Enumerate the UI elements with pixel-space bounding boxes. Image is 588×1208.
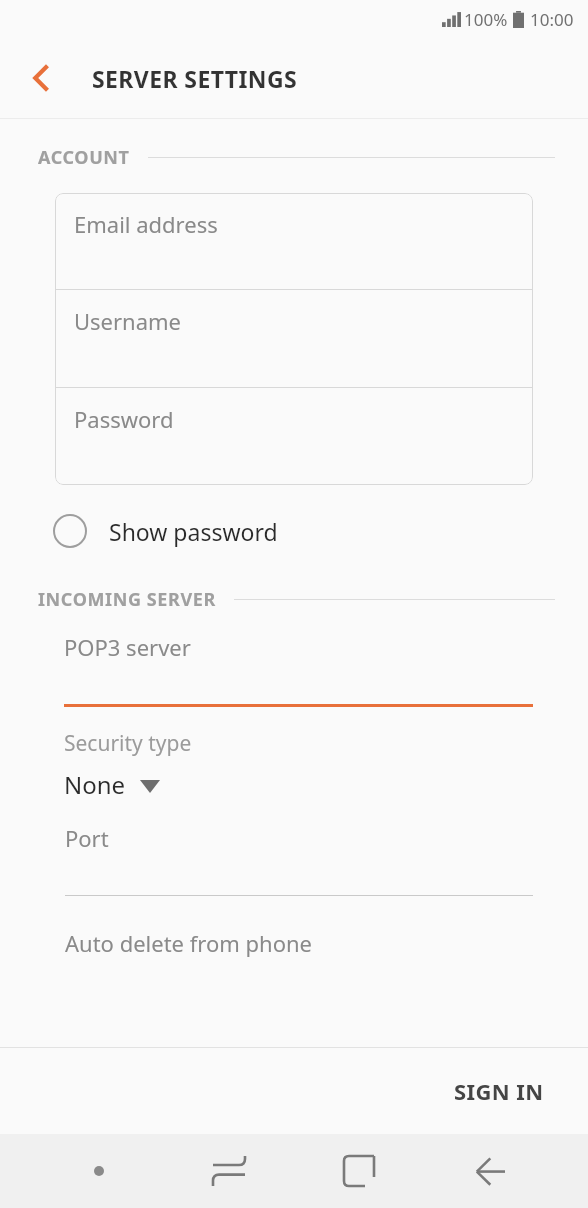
button[interactable]: Email address (55, 193, 533, 289)
staticText: Username (74, 306, 182, 336)
staticText: Port (65, 823, 109, 853)
button[interactable]: Back (18, 55, 64, 101)
staticText: Show password (109, 516, 278, 547)
button[interactable]: POP3 server (64, 632, 533, 707)
button[interactable]: Keyboard indicator (68, 1140, 130, 1202)
button[interactable]: Auto delete from phone (65, 928, 533, 958)
staticText: Email address (74, 209, 218, 239)
staticText: Password (74, 404, 174, 434)
button[interactable]: Username (55, 290, 533, 387)
staticText: SERVER SETTINGS (92, 63, 298, 94)
staticText: Auto delete from phone (65, 928, 312, 958)
button[interactable]: Port (65, 823, 533, 896)
staticText: Security type (64, 729, 192, 758)
staticText: None (64, 768, 126, 801)
button[interactable]: SIGN IN (440, 1064, 558, 1118)
button[interactable]: Show password (40, 503, 278, 559)
staticText: INCOMING SERVER (38, 587, 216, 612)
staticText: 10:00 (530, 8, 574, 31)
staticText: ACCOUNT (38, 145, 130, 170)
staticText: SIGN IN (454, 1076, 544, 1106)
button[interactable]: Security type (64, 729, 533, 801)
button[interactable]: Back (458, 1140, 520, 1202)
button[interactable]: Home (328, 1140, 390, 1202)
button[interactable]: Password (55, 388, 533, 485)
staticText: 100% (464, 8, 508, 31)
button[interactable]: Recent apps (198, 1140, 260, 1202)
staticText: POP3 server (64, 632, 191, 662)
